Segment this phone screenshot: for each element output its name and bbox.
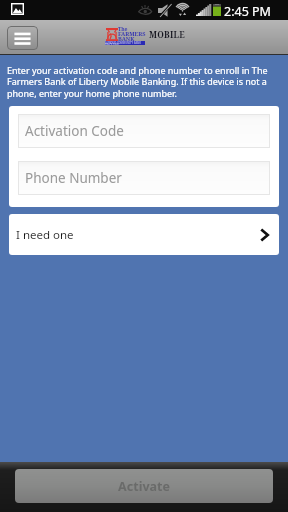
staticText: The	[118, 26, 128, 33]
staticText: Activation Code	[25, 122, 124, 140]
staticText: Enter your activation code and phone num…	[7, 64, 279, 100]
staticText: I need one	[16, 227, 74, 243]
staticText: BANK	[118, 35, 135, 43]
button[interactable]: I need one	[9, 214, 279, 255]
staticText: MOBILE	[149, 29, 186, 40]
staticText: Phone Number	[25, 169, 122, 187]
staticText: 2:45 PM	[224, 3, 271, 20]
button[interactable]: Activate	[15, 469, 273, 503]
staticText: A PROUD COMMUNITY BANK SINCE 1901	[105, 41, 145, 45]
staticText: FARMERS	[118, 30, 146, 38]
staticText: Activate	[118, 478, 170, 495]
button[interactable]: Menu	[7, 26, 38, 50]
